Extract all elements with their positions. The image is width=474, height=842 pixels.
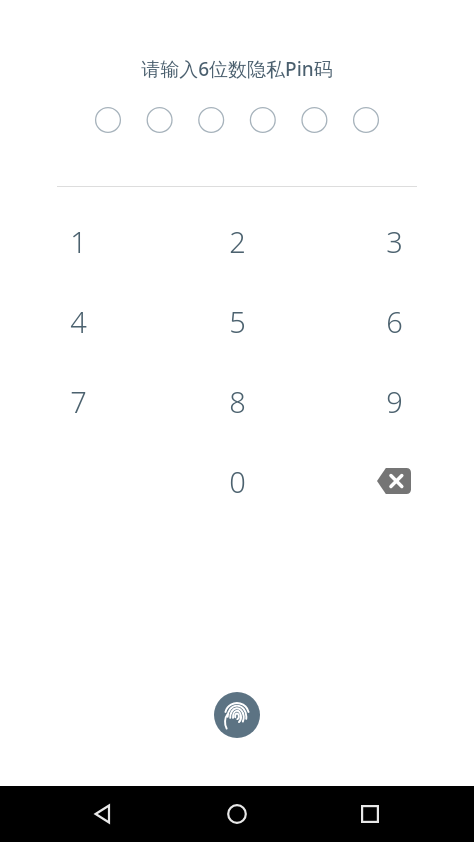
- button[interactable]: 7: [28, 365, 128, 437]
- staticText: 2: [229, 222, 246, 261]
- button[interactable]: 1: [28, 205, 128, 277]
- staticText: 请输入6位数隐私Pin码: [0, 56, 474, 82]
- button[interactable]: 0: [187, 445, 287, 517]
- button[interactable]: 3: [344, 205, 444, 277]
- button[interactable]: 9: [344, 365, 444, 437]
- staticText: 8: [229, 382, 246, 421]
- button[interactable]: Back: [79, 786, 127, 842]
- button[interactable]: 8: [187, 365, 287, 437]
- staticText: 4: [70, 302, 87, 341]
- staticText: 7: [70, 382, 87, 421]
- staticText: 1: [70, 222, 87, 261]
- button[interactable]: Recent apps: [346, 786, 394, 842]
- staticText: 9: [386, 382, 403, 421]
- button[interactable]: 5: [187, 285, 287, 357]
- staticText: 0: [229, 462, 246, 501]
- button[interactable]: 2: [187, 205, 287, 277]
- staticText: 6: [386, 302, 403, 341]
- button[interactable]: 6: [344, 285, 444, 357]
- button[interactable]: Backspace: [344, 445, 444, 517]
- staticText: 5: [229, 302, 246, 341]
- staticText: 3: [386, 222, 403, 261]
- button[interactable]: Home: [213, 786, 261, 842]
- button[interactable]: 4: [28, 285, 128, 357]
- button[interactable]: Fingerprint unlock: [214, 692, 260, 738]
